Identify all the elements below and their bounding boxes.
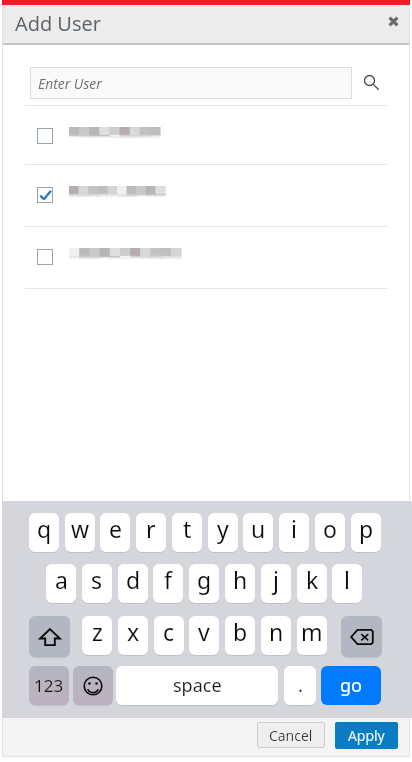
button[interactable]: Cancel	[257, 722, 325, 748]
staticText: d	[126, 564, 141, 595]
staticText: b	[233, 616, 248, 647]
button[interactable]: p	[351, 513, 381, 552]
button[interactable]: .	[284, 666, 316, 705]
button[interactable]: f	[153, 564, 183, 603]
staticText: p	[359, 513, 374, 544]
button[interactable]: u	[243, 513, 273, 552]
staticText: l	[344, 564, 350, 595]
button[interactable]: Enter User	[30, 67, 352, 99]
button[interactable]: d	[118, 564, 148, 603]
button[interactable]: s	[82, 564, 112, 603]
button[interactable]: j	[261, 564, 291, 603]
button[interactable]: o	[315, 513, 345, 552]
button[interactable]: go	[321, 666, 381, 705]
button[interactable]: y	[208, 513, 238, 552]
staticText: c	[163, 616, 175, 647]
button[interactable]: a	[46, 564, 76, 603]
button[interactable]: Shift	[29, 616, 70, 657]
staticText: t	[183, 513, 192, 544]
button[interactable]: k	[297, 564, 327, 603]
staticText: space	[173, 673, 222, 698]
button[interactable]: g	[189, 564, 219, 603]
staticText: Cancel	[269, 726, 313, 745]
button[interactable]	[3, 226, 409, 287]
staticText: go	[340, 673, 362, 698]
staticText: i	[291, 513, 297, 544]
staticText: z	[92, 616, 103, 647]
button[interactable]: w	[65, 513, 95, 552]
staticText: Add User	[15, 10, 101, 37]
button[interactable]: r	[136, 513, 166, 552]
staticText: f	[164, 564, 172, 595]
staticText: y	[217, 513, 229, 544]
button[interactable]: b	[225, 616, 255, 655]
button[interactable]: Search	[360, 72, 382, 94]
staticText: Apply	[348, 726, 385, 745]
button[interactable]: t	[172, 513, 202, 552]
staticText: g	[197, 564, 212, 595]
staticText: v	[198, 616, 210, 647]
button[interactable]: space	[116, 666, 278, 705]
button[interactable]: v	[189, 616, 219, 655]
staticText: r	[146, 513, 156, 544]
button[interactable]: Close	[379, 7, 407, 35]
staticText: k	[306, 564, 319, 595]
staticText: e	[109, 513, 122, 544]
staticText: x	[127, 616, 140, 647]
staticText: w	[71, 513, 90, 544]
staticText: .	[298, 673, 303, 698]
button[interactable]: q	[29, 513, 59, 552]
staticText: n	[269, 616, 284, 647]
staticText: a	[55, 564, 68, 595]
staticText: m	[301, 616, 323, 647]
staticText: s	[91, 564, 103, 595]
staticText: o	[323, 513, 337, 544]
staticText: Enter User	[38, 74, 102, 93]
button[interactable]: Numbers and symbols	[29, 666, 69, 705]
button[interactable]: e	[100, 513, 130, 552]
staticText: q	[37, 513, 52, 544]
staticText: j	[273, 564, 279, 595]
button[interactable]	[3, 105, 409, 166]
staticText: 123	[34, 674, 64, 697]
button[interactable]: h	[225, 564, 255, 603]
button[interactable]: i	[279, 513, 309, 552]
button[interactable]: x	[118, 616, 148, 655]
button[interactable]: m	[297, 616, 327, 655]
button[interactable]	[3, 164, 409, 225]
button[interactable]: Backspace	[341, 616, 382, 657]
button[interactable]: Apply	[335, 722, 398, 749]
staticText: h	[233, 564, 248, 595]
button[interactable]: l	[332, 564, 362, 603]
staticText: u	[251, 513, 266, 544]
button[interactable]: z	[82, 616, 112, 655]
button[interactable]: Emoji	[73, 666, 113, 705]
button[interactable]: c	[154, 616, 184, 655]
button[interactable]: n	[261, 616, 291, 655]
